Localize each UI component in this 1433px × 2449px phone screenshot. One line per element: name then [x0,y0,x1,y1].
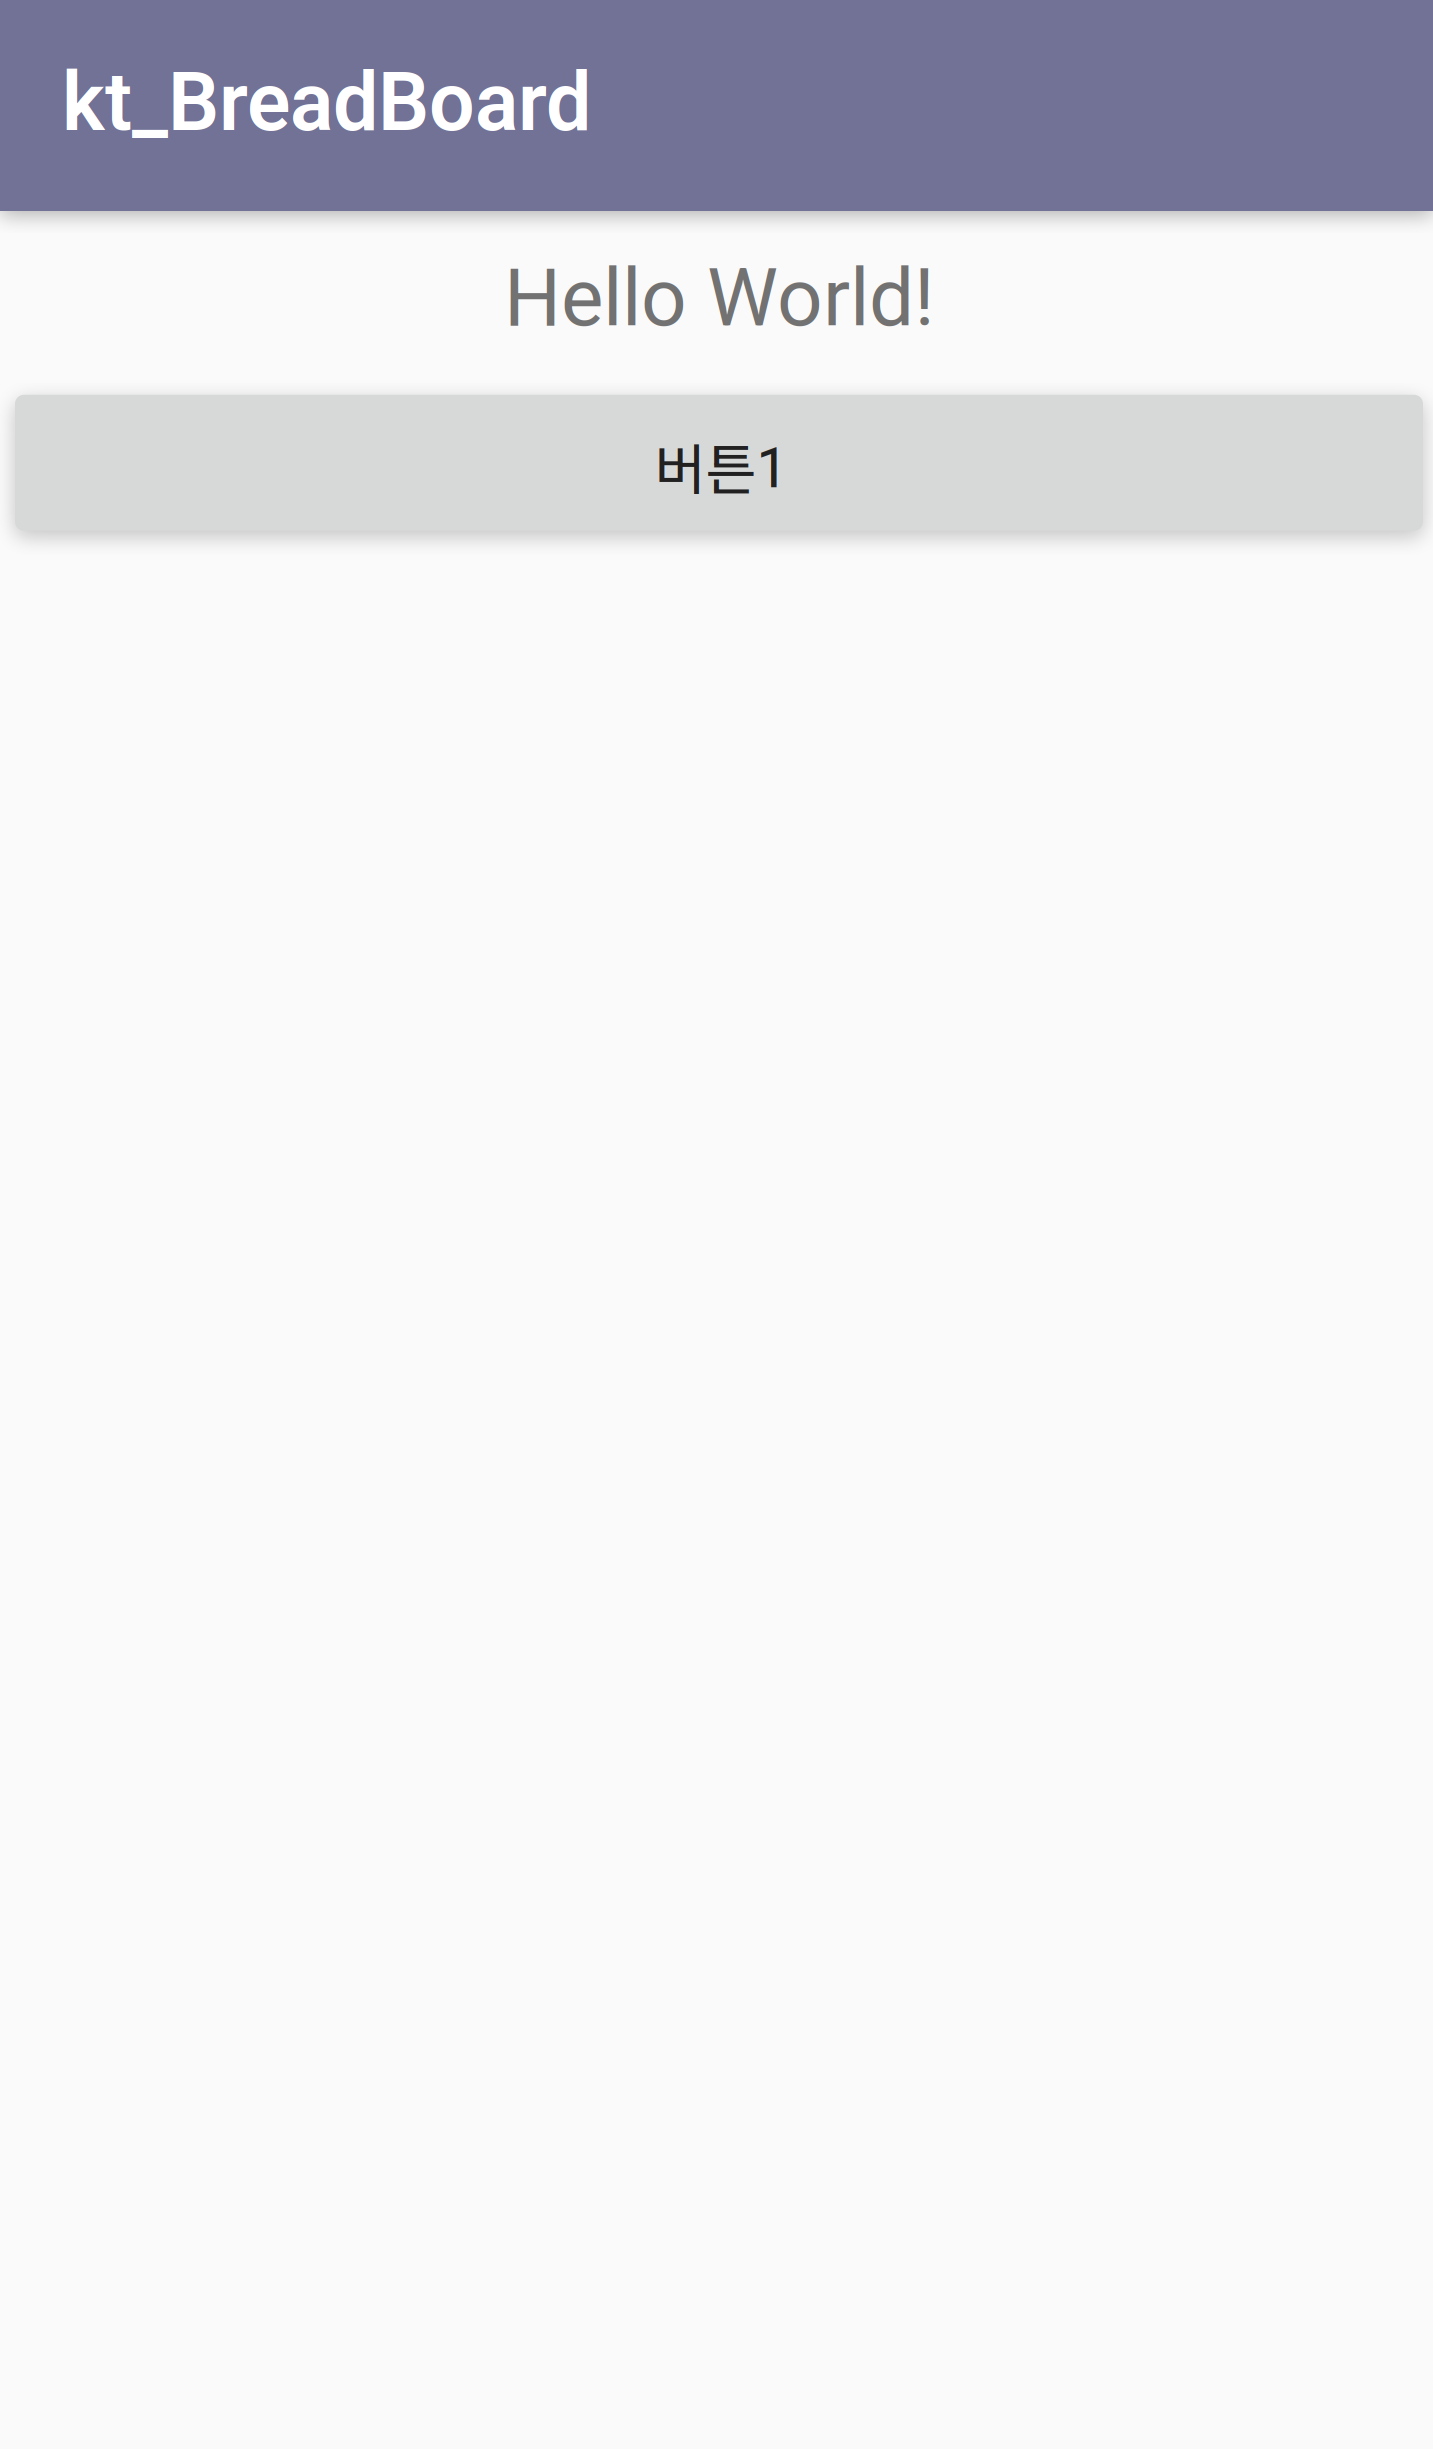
staticText: kt_BreadBoard [62,55,591,150]
staticText: 버튼1 [654,426,787,506]
button[interactable]: 버튼1 [15,395,1423,531]
staticText: Hello World! [504,251,935,345]
